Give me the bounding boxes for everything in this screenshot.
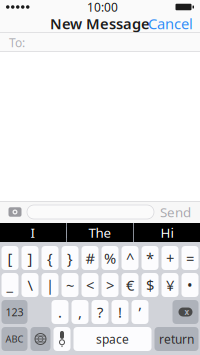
staticText: ~ — [66, 275, 74, 295]
staticText: | — [46, 275, 54, 295]
button[interactable]: return — [154, 327, 198, 351]
staticText: 123 — [5, 305, 23, 319]
staticText: < — [86, 275, 94, 295]
button[interactable]: I — [0, 223, 66, 242]
staticText: # — [85, 248, 94, 268]
staticText: % — [104, 248, 116, 268]
staticText: I — [31, 224, 36, 241]
button[interactable]: The — [67, 223, 133, 242]
button[interactable]: Next keyboard — [30, 327, 50, 351]
button[interactable]: ^ — [121, 246, 138, 270]
staticText: [ — [7, 248, 12, 268]
staticText: New Message — [50, 14, 150, 33]
button[interactable]: Hi — [134, 223, 200, 242]
staticText: • — [187, 275, 193, 295]
staticText: ^ — [126, 248, 134, 268]
staticText: ’ — [138, 302, 141, 322]
button[interactable]: ABC — [1, 327, 27, 351]
staticText: = — [186, 248, 194, 268]
staticText: ! — [118, 302, 122, 322]
button[interactable]: ¥ — [161, 273, 178, 297]
button[interactable]: > — [101, 273, 118, 297]
staticText: , — [78, 302, 82, 322]
staticText: ] — [27, 248, 32, 268]
button[interactable]: space — [73, 327, 151, 351]
button[interactable]: Camera — [3, 201, 27, 223]
button[interactable]: $ — [141, 273, 158, 297]
staticText: + — [166, 248, 174, 268]
button[interactable]: Cancel — [141, 10, 200, 37]
button[interactable]: \ — [21, 273, 38, 297]
button[interactable]: 123 — [1, 300, 27, 324]
staticText: ¥ — [166, 275, 174, 295]
button[interactable]: } — [61, 246, 78, 270]
button[interactable]: ? — [91, 300, 108, 324]
staticText: Hi — [160, 224, 173, 241]
staticText: { — [47, 248, 53, 268]
staticText: The — [88, 224, 111, 241]
staticText: ? — [97, 302, 103, 322]
button[interactable]: = — [181, 246, 198, 270]
button[interactable]: _ — [1, 273, 18, 297]
staticText: space — [96, 331, 129, 347]
staticText: > — [106, 275, 114, 295]
button[interactable]: | — [41, 273, 58, 297]
button[interactable]: Dictation — [53, 327, 70, 351]
staticText: ABC — [5, 333, 23, 345]
button[interactable]: ’ — [131, 300, 148, 324]
button[interactable]: ] — [21, 246, 38, 270]
staticText: To: — [9, 34, 25, 50]
staticText: \ — [27, 275, 32, 295]
button[interactable]: # — [81, 246, 98, 270]
staticText: return — [159, 331, 194, 347]
button[interactable]: Send — [154, 199, 197, 225]
staticText: Cancel — [148, 14, 193, 33]
button[interactable]: + — [161, 246, 178, 270]
button[interactable]: % — [101, 246, 118, 270]
button[interactable]: • — [181, 273, 198, 297]
staticText: _ — [6, 275, 13, 295]
button[interactable]: To: — [0, 33, 200, 52]
button[interactable]: * — [141, 246, 158, 270]
button[interactable]: Delete — [172, 300, 198, 324]
staticText: $ — [146, 275, 154, 295]
button[interactable]: . — [51, 300, 68, 324]
staticText: € — [126, 275, 134, 295]
button[interactable]: ~ — [61, 273, 78, 297]
staticText: Send — [160, 203, 191, 221]
staticText: x — [184, 307, 189, 317]
staticText: 10:00 — [87, 0, 118, 15]
staticText: . — [58, 302, 62, 322]
button[interactable]: { — [41, 246, 58, 270]
button[interactable]: ! — [111, 300, 128, 324]
button[interactable]: < — [81, 273, 98, 297]
button[interactable]: [ — [1, 246, 18, 270]
button[interactable]: , — [71, 300, 88, 324]
staticText: } — [67, 248, 73, 268]
staticText: * — [146, 248, 154, 268]
button[interactable]: € — [121, 273, 138, 297]
